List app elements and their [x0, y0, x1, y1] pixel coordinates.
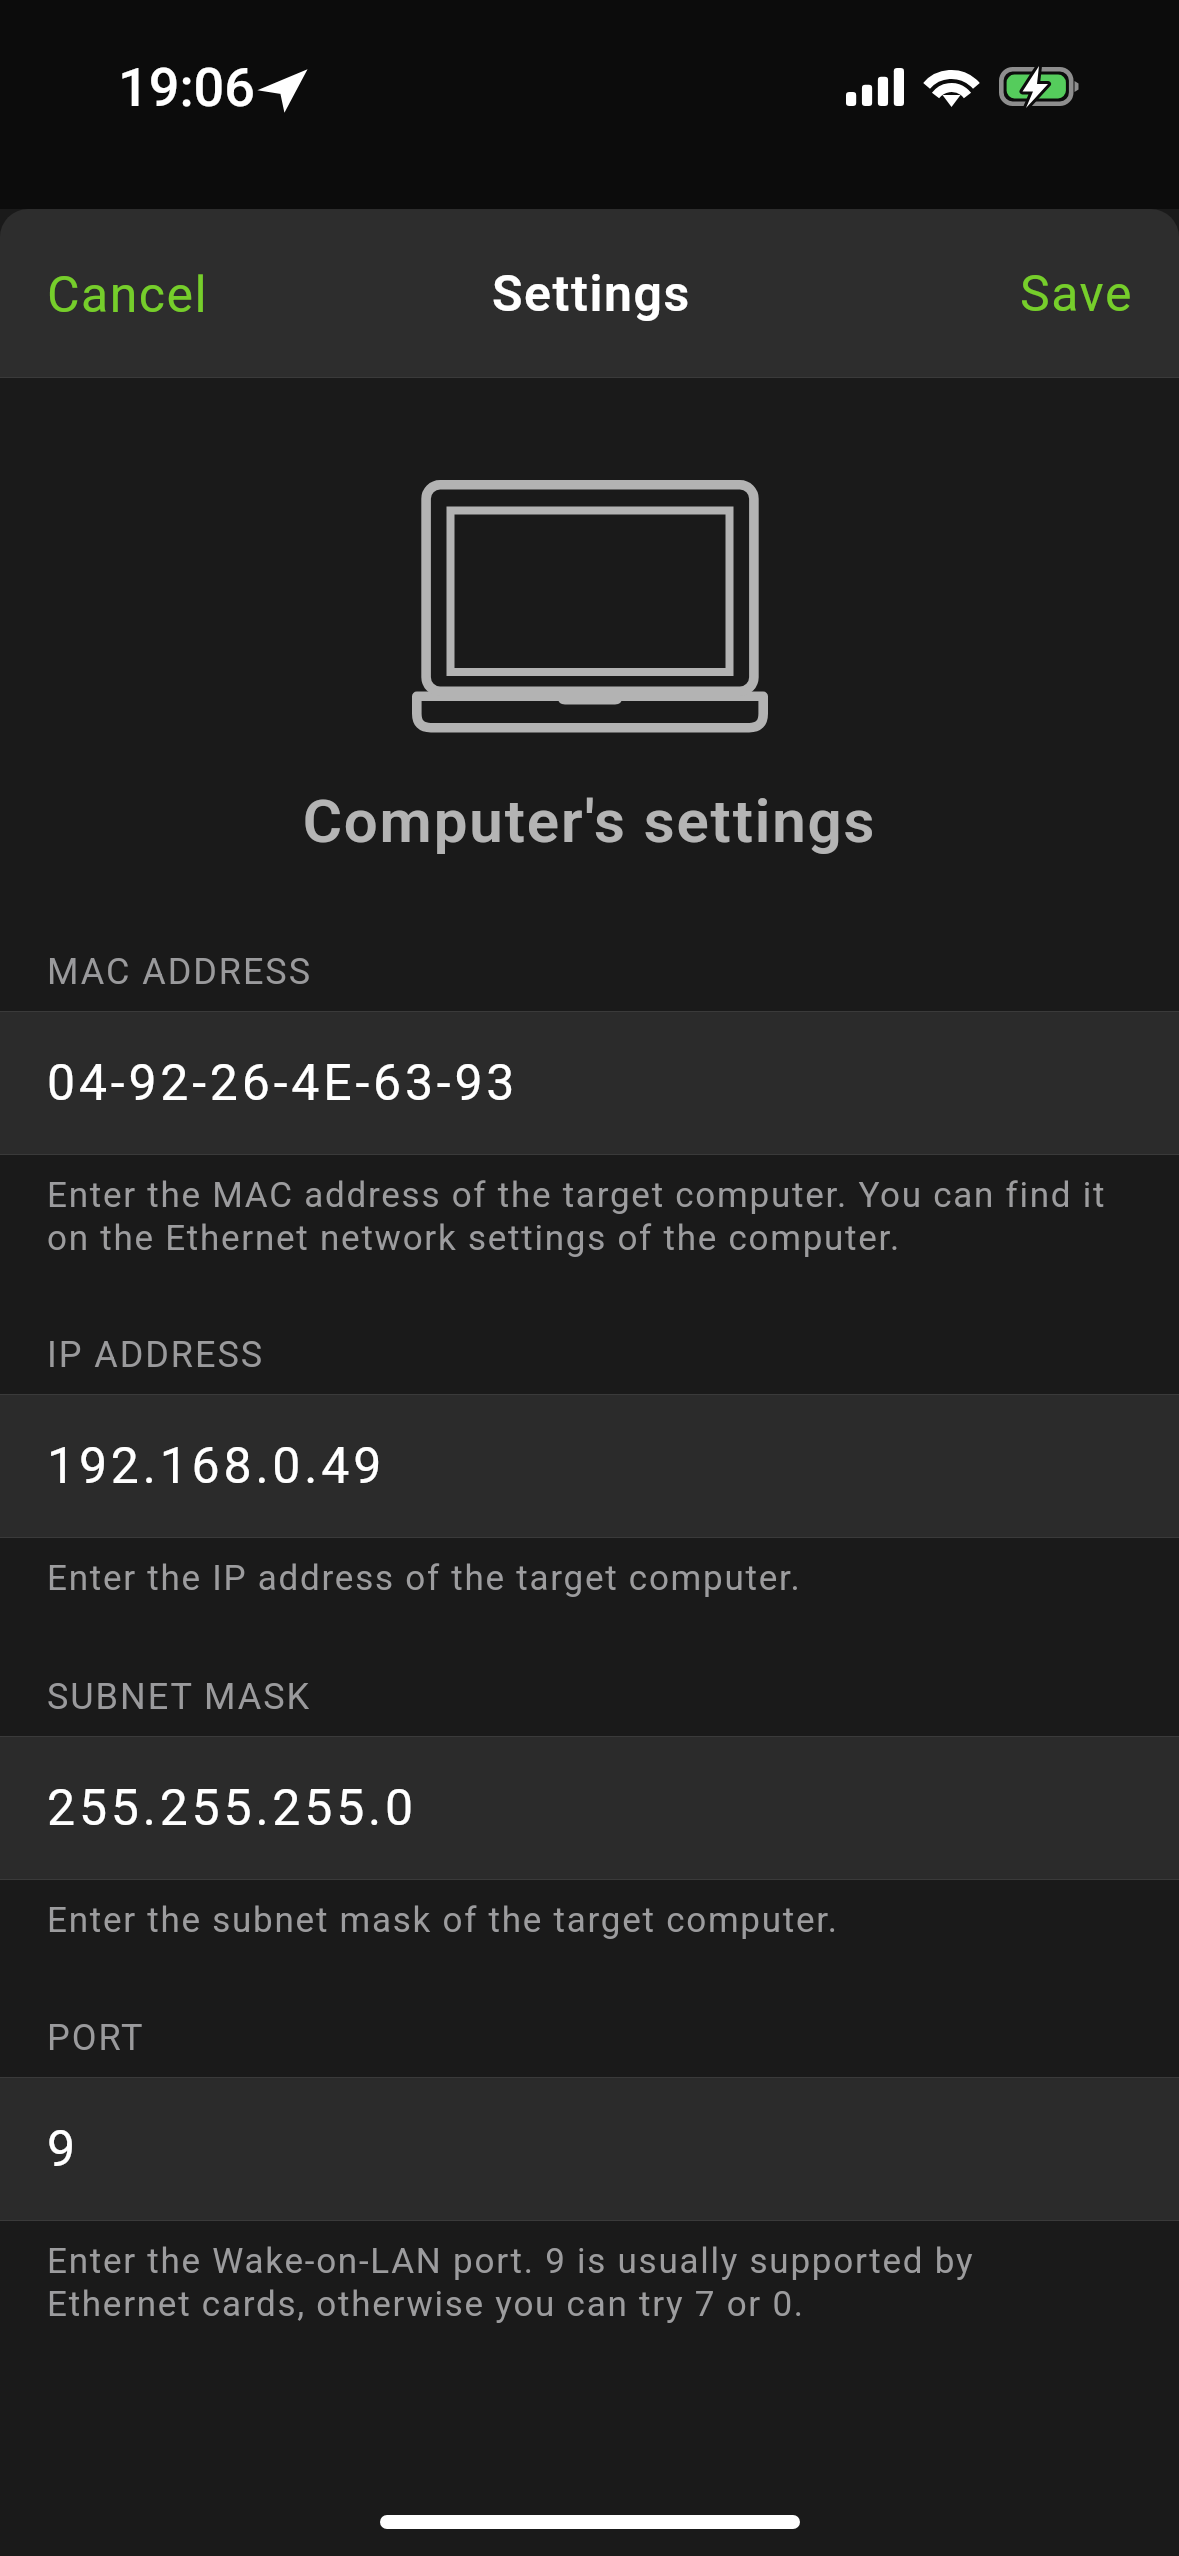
other: Location	[266, 73, 303, 106]
other: Cellular signal	[846, 68, 904, 106]
button[interactable]: 192.168.0.49	[0, 1394, 1179, 1538]
button[interactable]: 04-92-26-4E-63-93	[0, 1011, 1179, 1155]
button[interactable]: 9	[0, 2077, 1179, 2221]
button[interactable]: Cancel	[0, 244, 239, 347]
staticText: Enter the Wake-on-LAN port. 9 is usually…	[47, 2241, 1112, 2325]
staticText: Enter the subnet mask of the target comp…	[47, 1900, 1112, 1941]
other: Computer	[412, 480, 768, 733]
button[interactable]: 255.255.255.0	[0, 1736, 1179, 1880]
staticText: Computer's settings	[0, 786, 1179, 856]
staticText: Save	[1020, 265, 1133, 324]
staticText: 9	[47, 2120, 79, 2179]
staticText: 19:06	[118, 56, 256, 119]
staticText: 04-92-26-4E-63-93	[47, 1054, 519, 1113]
staticText: 255.255.255.0	[47, 1779, 417, 1838]
staticText: PORT	[47, 2017, 1179, 2059]
button[interactable]: Save	[990, 243, 1179, 346]
staticText: MAC ADDRESS	[47, 951, 1179, 993]
staticText: SUBNET MASK	[47, 1676, 1179, 1718]
staticText: Settings	[492, 265, 691, 324]
staticText: Enter the MAC address of the target comp…	[47, 1175, 1112, 1259]
staticText: IP ADDRESS	[47, 1334, 1179, 1376]
staticText: Cancel	[47, 266, 209, 325]
staticText: 192.168.0.49	[47, 1437, 386, 1496]
other: Wi-Fi	[926, 68, 977, 106]
staticText: Enter the IP address of the target compu…	[47, 1558, 1112, 1599]
other: Battery charging	[999, 67, 1081, 106]
